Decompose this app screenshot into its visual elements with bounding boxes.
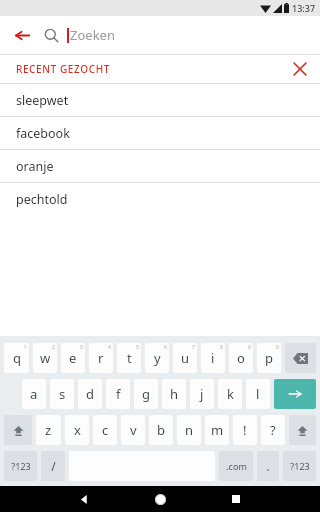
staticText: 3	[80, 344, 83, 351]
button[interactable]: w	[33, 343, 57, 373]
button[interactable]: b	[149, 415, 173, 445]
button[interactable]: facebook	[0, 117, 320, 149]
staticText: l	[256, 385, 260, 403]
staticText: r	[98, 349, 104, 367]
staticText: .	[266, 458, 270, 474]
staticText: x	[74, 421, 81, 439]
button[interactable]: Back	[46, 486, 122, 512]
button[interactable]: Backspace	[285, 343, 316, 373]
staticText: v	[130, 421, 137, 439]
staticText: c	[102, 421, 109, 439]
staticText: 8	[220, 344, 223, 351]
staticText: h	[170, 385, 179, 403]
staticText: 0	[276, 344, 279, 351]
button[interactable]: .	[257, 451, 279, 481]
button[interactable]: d	[78, 379, 102, 409]
staticText: m	[211, 421, 224, 439]
button[interactable]: f	[106, 379, 130, 409]
button[interactable]: Clear recent searches	[282, 55, 318, 83]
button[interactable]: !	[233, 415, 257, 445]
button[interactable]: l	[246, 379, 270, 409]
staticText: o	[237, 349, 245, 367]
staticText: s	[59, 385, 66, 403]
button[interactable]: c	[93, 415, 117, 445]
staticText: p	[265, 349, 273, 367]
button[interactable]: x	[65, 415, 89, 445]
button[interactable]: z	[36, 415, 61, 445]
button[interactable]: ?	[261, 415, 285, 445]
staticText: y	[154, 349, 161, 367]
button[interactable]: Back	[0, 16, 44, 54]
button[interactable]: Search	[274, 379, 316, 409]
staticText: .com	[226, 460, 247, 472]
staticText: e	[69, 349, 77, 367]
staticText: 5	[136, 344, 139, 351]
button[interactable]: s	[50, 379, 74, 409]
button[interactable]: Shift	[289, 415, 316, 445]
staticText: d	[86, 385, 94, 403]
button[interactable]: pechtold	[0, 183, 320, 215]
button[interactable]: j	[190, 379, 214, 409]
staticText: u	[181, 349, 190, 367]
staticText: pechtold	[16, 191, 68, 208]
button[interactable]: r	[89, 343, 113, 373]
button[interactable]: oranje	[0, 150, 320, 182]
staticText: f	[116, 385, 121, 403]
staticText: j	[200, 385, 204, 403]
staticText: Zoeken	[70, 26, 115, 44]
staticText: facebook	[16, 125, 70, 142]
staticText: w	[40, 349, 51, 367]
staticText: a	[30, 385, 38, 403]
button[interactable]: u	[173, 343, 197, 373]
staticText: z	[45, 421, 52, 439]
staticText: t	[127, 349, 132, 367]
staticText: 9	[248, 344, 251, 351]
button[interactable]: a	[22, 379, 46, 409]
staticText: oranje	[16, 158, 54, 175]
staticText: 13:37	[292, 2, 316, 14]
staticText: /	[51, 458, 56, 474]
staticText: b	[157, 421, 165, 439]
button[interactable]: ?123	[4, 451, 37, 481]
button[interactable]: .com	[219, 451, 253, 481]
staticText: 6	[164, 344, 167, 351]
button[interactable]: i	[201, 343, 225, 373]
staticText: !	[243, 421, 247, 439]
staticText: k	[227, 385, 234, 403]
staticText: 1	[24, 344, 27, 351]
button[interactable]: h	[162, 379, 186, 409]
button[interactable]: o	[229, 343, 253, 373]
staticText: i	[211, 349, 215, 367]
button[interactable]: sleepwet	[0, 84, 320, 116]
staticText: 2	[52, 344, 55, 351]
staticText: ?123	[11, 460, 31, 472]
staticText: sleepwet	[16, 92, 69, 109]
button[interactable]: p	[257, 343, 281, 373]
button[interactable]: e	[61, 343, 85, 373]
button[interactable]: t	[117, 343, 141, 373]
staticText: n	[185, 421, 194, 439]
button[interactable]: q	[4, 343, 29, 373]
staticText: RECENT GEZOCHT	[16, 62, 110, 76]
staticText: ?123	[290, 460, 310, 472]
button[interactable]: n	[177, 415, 201, 445]
button[interactable]: y	[145, 343, 169, 373]
staticText: ?	[270, 421, 276, 439]
staticText: q	[13, 349, 21, 367]
button[interactable]: Home	[122, 486, 198, 512]
button[interactable]: Shift	[4, 415, 32, 445]
button[interactable]: /	[41, 451, 65, 481]
button[interactable]: g	[134, 379, 158, 409]
staticText: 4	[108, 344, 111, 351]
button[interactable]: m	[205, 415, 229, 445]
staticText: 7	[192, 344, 195, 351]
button[interactable]: ?123	[283, 451, 316, 481]
button[interactable]: Recents	[198, 486, 274, 512]
staticText: g	[142, 385, 150, 403]
button[interactable]: v	[121, 415, 145, 445]
button[interactable]: k	[218, 379, 242, 409]
